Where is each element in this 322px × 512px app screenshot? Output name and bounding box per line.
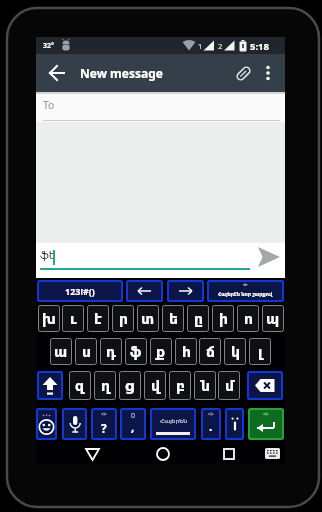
staticText: ? (101, 420, 107, 436)
staticText: ց (125, 378, 135, 394)
staticText: New message (80, 65, 163, 81)
button[interactable] (260, 62, 276, 84)
staticText: Հայերէն նոր շարքով (218, 291, 273, 298)
staticText: տ (141, 311, 155, 327)
staticText: To (43, 98, 55, 112)
button[interactable] (254, 244, 284, 274)
staticText: <> (243, 282, 248, 287)
staticText: կ (231, 344, 240, 360)
staticText: <> (208, 411, 214, 418)
staticText: 32° (43, 41, 54, 51)
staticText: ր (119, 311, 128, 327)
button[interactable]: <> (91, 408, 117, 440)
button[interactable]: ղ (94, 371, 116, 400)
button[interactable] (233, 63, 254, 84)
button[interactable] (126, 280, 163, 302)
button[interactable]: ւ (62, 305, 84, 332)
staticText: <> (101, 411, 107, 418)
button[interactable]: կ (224, 338, 246, 365)
staticText: , (131, 418, 135, 434)
staticText: բ (176, 378, 185, 394)
staticText: ճ (206, 344, 215, 360)
button[interactable] (37, 371, 63, 400)
staticText: պ (266, 311, 280, 327)
button[interactable]: ե (162, 305, 184, 332)
button[interactable]: Հայերեն (150, 408, 196, 440)
staticText: լ (258, 344, 263, 360)
button[interactable]: տ (137, 305, 159, 332)
staticText: հ (182, 344, 191, 360)
staticText: ի (219, 311, 228, 327)
staticText: դ (106, 344, 116, 360)
staticText: մ (225, 378, 234, 394)
button[interactable] (167, 280, 204, 302)
button[interactable]: ի (212, 305, 234, 332)
button[interactable] (152, 445, 174, 463)
button[interactable]: <> (207, 280, 284, 302)
staticText: 0 (131, 411, 136, 421)
button[interactable] (247, 371, 283, 400)
staticText: ն (201, 378, 210, 394)
button[interactable]: <> (248, 408, 284, 440)
button[interactable]: մ (218, 371, 240, 400)
staticText: ղ (101, 378, 110, 394)
button[interactable]: դ (100, 338, 122, 365)
button[interactable]: 123!#() (37, 280, 123, 302)
button[interactable] (225, 408, 244, 440)
button[interactable]: ն (194, 371, 216, 400)
button[interactable] (81, 445, 103, 463)
staticText: 2 (218, 41, 223, 51)
button[interactable]: պ (262, 305, 284, 332)
staticText: վ (151, 378, 160, 394)
button[interactable]: <> (201, 408, 221, 440)
staticText: ւ (70, 311, 77, 327)
button[interactable] (263, 446, 281, 460)
button[interactable]: է (87, 305, 109, 332)
staticText: Հայերեն (160, 417, 187, 424)
staticText: ս (82, 344, 91, 360)
button[interactable] (62, 408, 87, 440)
button[interactable]: վ (144, 371, 166, 400)
staticText: ե (169, 311, 178, 327)
button[interactable]: ց (119, 371, 141, 400)
staticText: ֆե (40, 249, 56, 262)
button[interactable] (46, 62, 68, 84)
staticText: ք (156, 344, 166, 360)
button[interactable]: հ (175, 338, 197, 365)
staticText: ֆ (130, 344, 142, 360)
staticText: է (94, 311, 102, 327)
button[interactable]: ֆ (125, 338, 147, 365)
button[interactable]: ը (187, 305, 209, 332)
staticText: 1 (198, 41, 203, 51)
staticText: խ (42, 311, 56, 327)
button[interactable]: բ (169, 371, 191, 400)
staticText: զ (75, 378, 85, 394)
button[interactable]: ա (50, 338, 72, 365)
button[interactable] (218, 445, 240, 463)
button[interactable] (36, 92, 285, 122)
button[interactable]: ճ (199, 338, 221, 365)
staticText: . (209, 418, 213, 434)
staticText: 5:18 (250, 40, 269, 53)
button[interactable]: խ (38, 305, 60, 332)
button[interactable]: 0 (120, 408, 146, 440)
button[interactable]: ք (150, 338, 172, 365)
button[interactable]: զ (69, 371, 91, 400)
staticText: ո (244, 311, 253, 327)
button[interactable]: ս (75, 338, 97, 365)
staticText: ա (54, 344, 68, 360)
staticText: 123!#() (65, 285, 95, 297)
button[interactable]: ո (237, 305, 259, 332)
button[interactable] (36, 408, 57, 440)
button[interactable]: ր (112, 305, 134, 332)
staticText: ը (194, 311, 203, 327)
button[interactable]: լ (249, 338, 271, 365)
staticText: <> (263, 411, 269, 418)
